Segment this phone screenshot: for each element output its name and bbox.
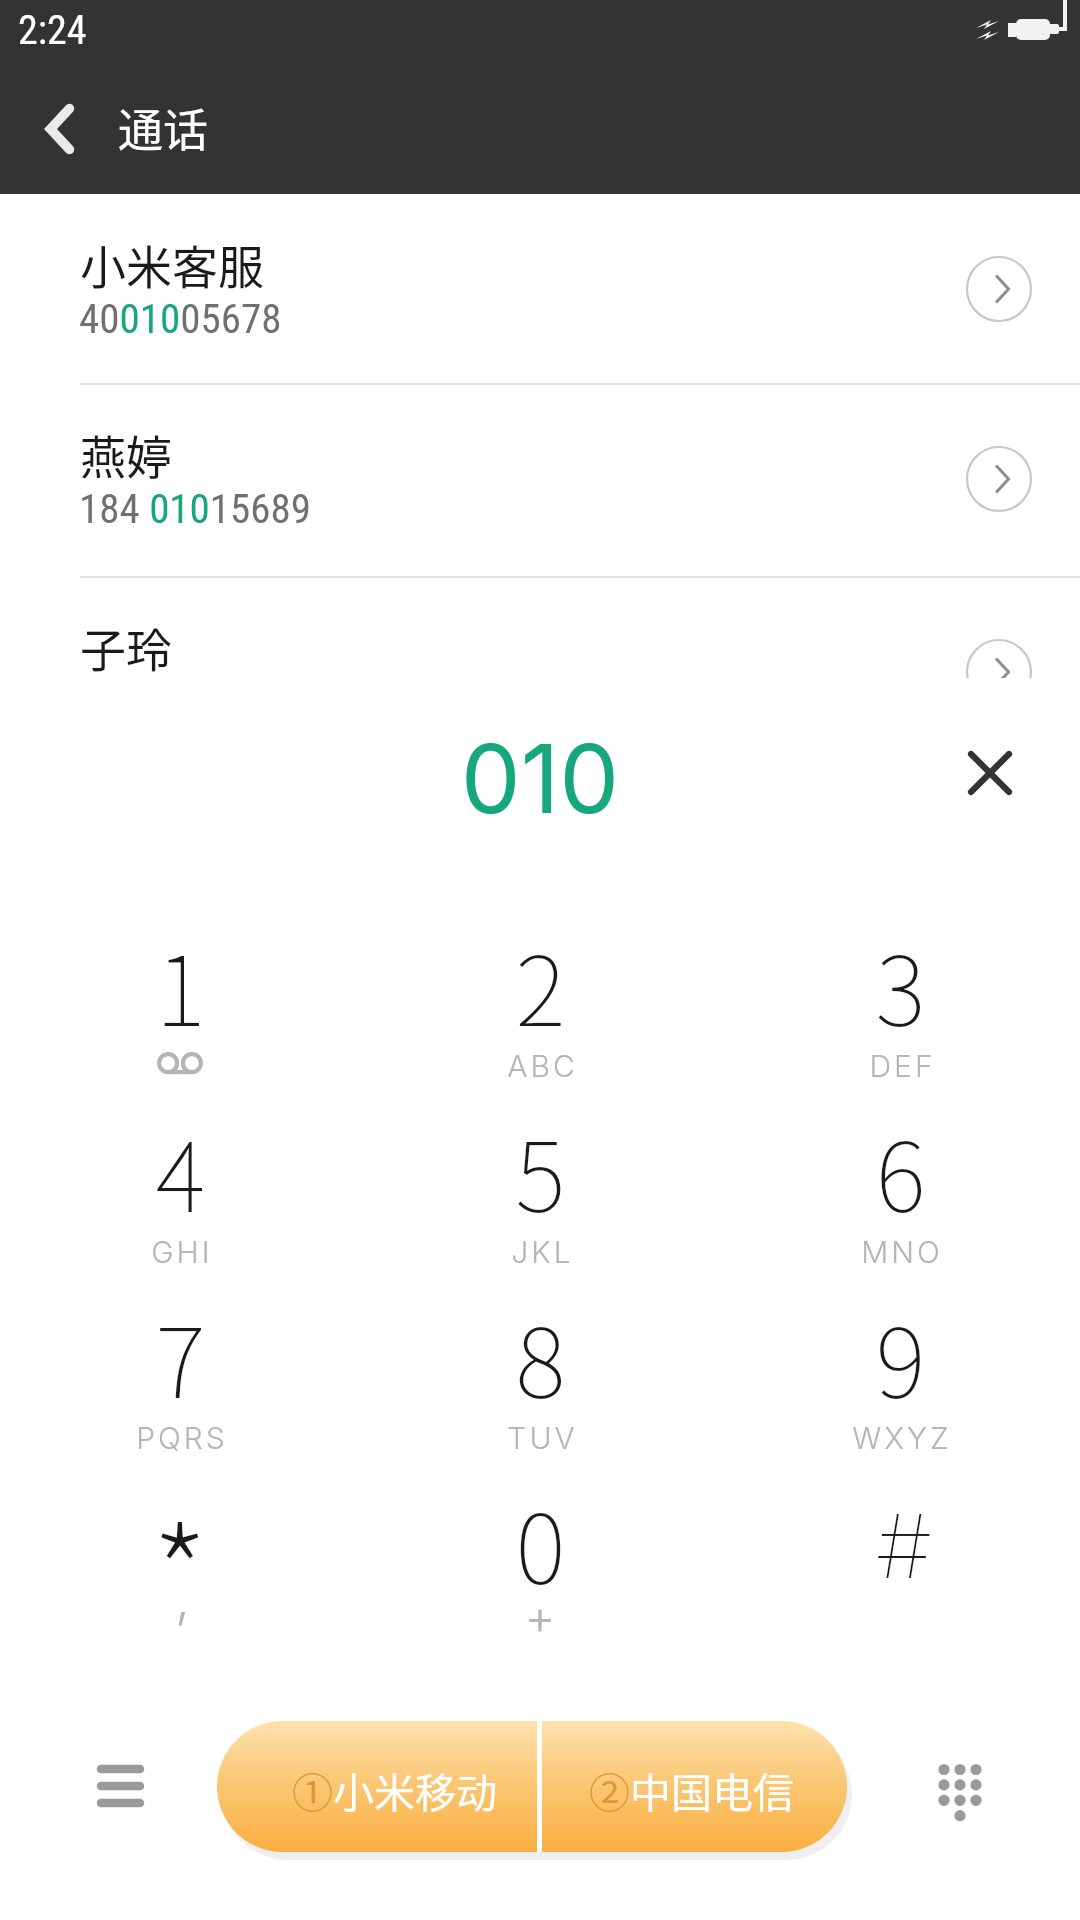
button[interactable]: Contact details — [966, 256, 1032, 322]
button[interactable]: 3 — [720, 923, 1080, 1109]
staticText: DEF — [869, 1048, 936, 1084]
button[interactable]: * — [0, 1481, 360, 1667]
staticText: 8 — [515, 1287, 566, 1426]
button[interactable]: 1 — [0, 923, 360, 1109]
staticText: 通话 — [118, 95, 209, 160]
staticText: # — [876, 1493, 932, 1599]
staticText: MNO — [861, 1234, 943, 1270]
staticText: JKL — [511, 1234, 574, 1270]
button[interactable]: Contact details — [966, 446, 1032, 512]
staticText: 010 — [0, 721, 1080, 836]
staticText: , — [175, 1567, 190, 1630]
staticText: 4001005678 — [79, 295, 282, 343]
button[interactable]: 7 — [0, 1295, 360, 1481]
button[interactable]: 燕婷 — [0, 385, 1080, 573]
button[interactable]: Contact details — [966, 639, 1032, 705]
button[interactable]: 小米客服 — [0, 195, 1080, 383]
button[interactable]: 0 — [360, 1481, 720, 1667]
staticText: 7 — [155, 1287, 206, 1426]
button[interactable]: ②中国电信 — [542, 1721, 847, 1852]
staticText: 184 01015689 — [79, 485, 312, 533]
button[interactable]: 5 — [360, 1109, 720, 1295]
button[interactable]: Back — [12, 74, 108, 184]
staticText: 2:24 — [18, 7, 87, 54]
button[interactable]: 2 — [360, 923, 720, 1109]
staticText: TUV — [507, 1420, 578, 1456]
staticText: 6 — [875, 1101, 926, 1240]
button[interactable]: 9 — [720, 1295, 1080, 1481]
staticText: ABC — [507, 1048, 578, 1084]
staticText: 9 — [875, 1287, 926, 1426]
button[interactable]: 4 — [0, 1109, 360, 1295]
staticText: + — [524, 1587, 556, 1645]
staticText: PQRS — [136, 1420, 228, 1456]
button[interactable]: # — [720, 1481, 1080, 1667]
button[interactable]: Dialpad — [875, 1713, 1045, 1873]
staticText: 4 — [155, 1101, 206, 1240]
staticText: 子玲 — [80, 614, 172, 681]
button[interactable]: 6 — [720, 1109, 1080, 1295]
staticText: GHI — [151, 1234, 213, 1270]
staticText: 1 — [155, 915, 206, 1054]
staticText: ①小米移动 — [292, 1760, 497, 1819]
staticText: 燕婷 — [80, 421, 172, 488]
staticText: 小米客服 — [80, 231, 264, 298]
staticText: 3 — [875, 915, 926, 1054]
button[interactable]: 8 — [360, 1295, 720, 1481]
button[interactable]: Clear — [931, 714, 1049, 832]
staticText: 2 — [515, 915, 566, 1054]
staticText: 0 — [515, 1473, 566, 1612]
button[interactable]: 子玲 — [0, 578, 1080, 766]
button[interactable]: Call log menu — [35, 1706, 205, 1866]
staticText: * — [150, 1470, 210, 1656]
button[interactable]: ①小米移动 — [217, 1721, 537, 1852]
staticText: WXYZ — [852, 1420, 952, 1456]
staticText: ②中国电信 — [589, 1760, 794, 1819]
staticText: 5 — [515, 1101, 566, 1240]
